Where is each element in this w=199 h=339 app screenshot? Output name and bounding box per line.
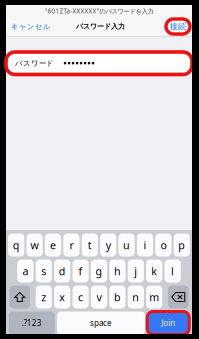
button[interactable]: f (72, 259, 89, 282)
button[interactable]: z (36, 285, 52, 308)
staticText: u (123, 238, 130, 252)
staticText: •••••••• (63, 56, 95, 70)
staticText: w (31, 238, 39, 252)
staticText: n (132, 290, 139, 304)
button[interactable]: m (146, 285, 162, 308)
staticText: j (134, 264, 137, 278)
staticText: y (106, 238, 111, 252)
button[interactable]: g (91, 259, 107, 282)
button[interactable]: 接続 (140, 17, 192, 36)
button[interactable]: Delete (168, 285, 188, 308)
button[interactable]: n (128, 285, 144, 308)
button[interactable]: a (17, 259, 33, 282)
staticText: l (171, 264, 174, 278)
staticText: v (96, 290, 101, 304)
button[interactable]: k (146, 259, 162, 282)
button[interactable]: u (118, 233, 135, 256)
staticText: d (59, 264, 66, 278)
staticText: h (114, 264, 121, 278)
staticText: k (151, 264, 157, 278)
staticText: e (50, 238, 56, 252)
button[interactable]: y (100, 233, 116, 256)
staticText: .?123 (22, 318, 42, 328)
button[interactable]: x (54, 285, 70, 308)
button[interactable]: w (26, 233, 43, 256)
staticText: パスワード (15, 59, 54, 68)
button[interactable]: Join (147, 311, 189, 334)
staticText: "601ZTa-XXXXXX"のパスワードを入力 (44, 7, 153, 15)
staticText: キャンセル (11, 22, 51, 31)
staticText: t (88, 238, 92, 252)
button[interactable]: v (91, 285, 107, 308)
staticText: s (41, 264, 46, 278)
button[interactable]: b (109, 285, 125, 308)
staticText: z (41, 290, 46, 304)
staticText: f (79, 264, 83, 278)
staticText: b (114, 290, 121, 304)
button[interactable]: l (164, 259, 181, 282)
button[interactable]: e (45, 233, 61, 256)
button[interactable]: p (174, 233, 190, 256)
button[interactable]: q (8, 233, 24, 256)
button[interactable]: t (82, 233, 98, 256)
button[interactable]: c (72, 285, 89, 308)
staticText: パスワード入力 (76, 22, 125, 31)
staticText: Join (161, 318, 175, 328)
button[interactable]: キャンセル (6, 17, 61, 36)
staticText: p (178, 238, 185, 252)
staticText: 接続 (170, 21, 186, 32)
button[interactable]: h (109, 259, 125, 282)
staticText: x (59, 290, 65, 304)
button[interactable]: i (137, 233, 153, 256)
button[interactable]: .?123 (9, 311, 55, 334)
staticText: q (13, 238, 20, 252)
button[interactable]: d (54, 259, 70, 282)
staticText: c (78, 290, 83, 304)
button[interactable]: s (36, 259, 52, 282)
button[interactable]: j (128, 259, 144, 282)
button[interactable]: o (155, 233, 171, 256)
staticText: i (143, 238, 146, 252)
staticText: g (95, 264, 102, 278)
staticText: o (160, 238, 166, 252)
staticText: r (69, 238, 73, 252)
button[interactable]: r (63, 233, 79, 256)
button[interactable]: space (57, 311, 145, 334)
staticText: m (149, 290, 159, 304)
button[interactable]: Shift (9, 285, 30, 308)
staticText: a (22, 264, 28, 278)
staticText: space (90, 318, 112, 328)
